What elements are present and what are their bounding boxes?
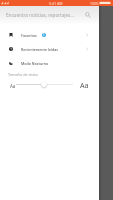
staticText: Tamaño de texto [8,72,38,77]
staticText: Aa [10,83,16,89]
staticText: Recientemente leídas [21,47,58,52]
button[interactable]: Buscar [81,8,95,22]
staticText: Encuentra noticias, reportajes... [6,12,74,18]
staticText: 100% [90,1,99,6]
button[interactable]: Favoritos [0,28,99,42]
button[interactable]: Recientemente leídas [0,42,99,56]
button[interactable]: Tamaño de texto [40,80,48,88]
staticText: 1 [43,33,45,37]
button[interactable]: Modo Nocturno [0,56,99,70]
staticText: Aa [80,80,89,90]
staticText: Favoritos [21,33,37,38]
staticText: Modo Nocturno [21,61,49,66]
staticText: 5:41 AM [49,1,63,6]
